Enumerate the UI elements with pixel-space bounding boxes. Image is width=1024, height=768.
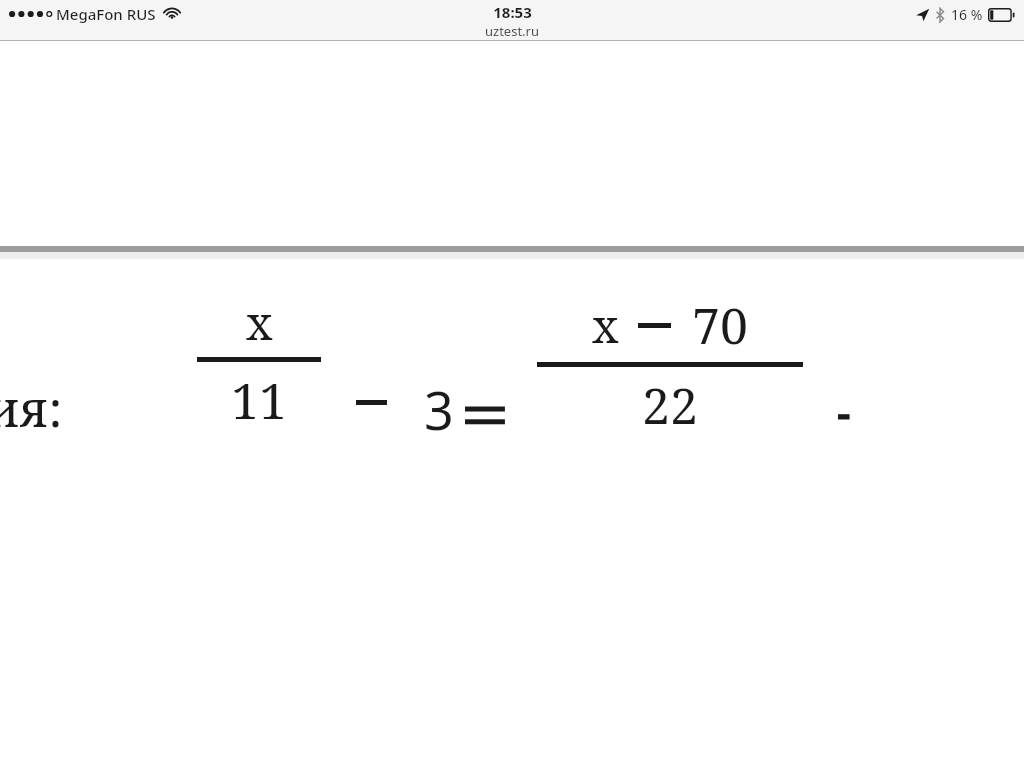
button[interactable]: x bbox=[537, 291, 803, 439]
staticText: 70 bbox=[692, 291, 748, 359]
staticText: uztest.ru bbox=[485, 22, 539, 40]
button[interactable]: Carrier signal MegaFon RUS bbox=[8, 4, 181, 24]
button[interactable]: Battery 16 percent, bluetooth, location bbox=[915, 5, 1015, 24]
button[interactable] bbox=[838, 407, 854, 423]
staticText: MegaFon RUS bbox=[56, 4, 156, 24]
staticText: 16 % bbox=[951, 5, 983, 24]
staticText: 18:53 bbox=[493, 2, 532, 22]
staticText: x bbox=[246, 291, 273, 354]
staticText: 3 bbox=[424, 374, 454, 445]
staticText: x bbox=[592, 294, 619, 357]
staticText: ия: bbox=[0, 374, 63, 442]
staticText: 11 bbox=[231, 366, 287, 434]
button[interactable]: ия: bbox=[0, 374, 63, 442]
staticText: 22 bbox=[642, 371, 698, 439]
button[interactable]: x bbox=[197, 291, 321, 434]
button[interactable]: 3 bbox=[356, 374, 507, 445]
button[interactable]: 18:53 bbox=[485, 2, 539, 40]
